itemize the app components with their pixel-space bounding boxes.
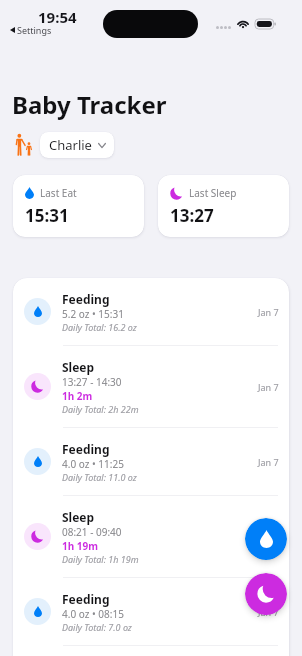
staticText: Daily Total: 7.0 oz — [62, 621, 132, 633]
staticText: 5.2 oz • 15:31 — [62, 307, 124, 321]
button[interactable]: Last Sleep — [158, 175, 289, 237]
button[interactable]: Log feeding — [245, 518, 287, 560]
staticText: Daily Total: 1h 19m — [62, 553, 139, 565]
staticText: 1h 2m — [62, 389, 93, 403]
button[interactable]: Feeding — [13, 428, 289, 495]
staticText: 15:31 — [25, 204, 69, 227]
staticText: Last Sleep — [189, 186, 237, 200]
staticText: 19:54 — [38, 7, 77, 27]
staticText: Sleep — [62, 509, 95, 525]
staticText: Feeding — [62, 591, 110, 607]
staticText: Jan 7 — [258, 456, 279, 468]
staticText: Daily Total: 2h 22m — [62, 403, 139, 415]
staticText: Feeding — [62, 291, 110, 307]
button[interactable]: Feeding — [13, 278, 289, 345]
staticText: Jan 7 — [258, 606, 279, 618]
staticText: 08:21 - 09:40 — [62, 525, 122, 539]
staticText: Jan 7 — [258, 306, 279, 318]
staticText: Daily Total: 11.0 oz — [62, 471, 137, 483]
staticText: Feeding — [62, 441, 110, 457]
staticText: 4.0 oz • 11:25 — [62, 457, 124, 471]
staticText: Baby Tracker — [12, 88, 167, 121]
button[interactable]: Last Eat — [13, 175, 144, 237]
staticText: Jan 7 — [258, 531, 279, 543]
button[interactable]: Log sleep — [245, 573, 287, 615]
button[interactable]: Sleep — [13, 346, 289, 427]
staticText: Sleep — [62, 359, 95, 375]
staticText: 13:27 — [170, 204, 214, 227]
button[interactable]: Feeding — [13, 578, 289, 645]
staticText: 13:27 - 14:30 — [62, 375, 122, 389]
staticText: Last Eat — [40, 186, 77, 200]
button[interactable]: Sleep — [13, 496, 289, 577]
staticText: 4.0 oz • 08:15 — [62, 607, 124, 621]
staticText: Jan 7 — [258, 381, 279, 393]
staticText: 1h 19m — [62, 539, 99, 553]
staticText: Charlie — [49, 136, 92, 154]
staticText: Settings — [17, 24, 52, 36]
button[interactable]: Charlie — [40, 132, 114, 158]
staticText: Daily Total: 16.2 oz — [62, 321, 137, 333]
